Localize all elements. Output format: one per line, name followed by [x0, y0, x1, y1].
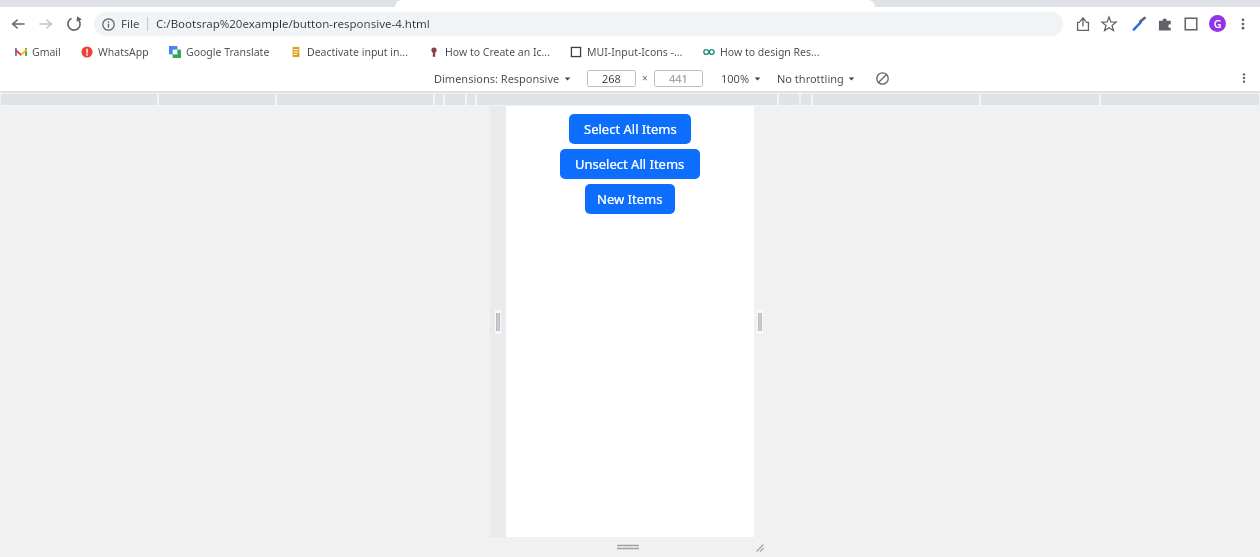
staticText: File — [121, 16, 140, 32]
button[interactable]: Select All Items — [569, 114, 691, 144]
button[interactable]: More options — [1233, 14, 1253, 34]
staticText: How to Create an Ic... — [445, 45, 550, 59]
button[interactable]: Disable cache — [873, 69, 891, 87]
button[interactable]: Unselect All Items — [560, 149, 700, 179]
staticText: 441 — [669, 71, 688, 86]
button[interactable]: Resize width left — [493, 307, 503, 337]
button[interactable]: Resize width right — [755, 307, 765, 337]
button[interactable]: How to Create an Ic... — [425, 43, 553, 61]
button[interactable]: Bookmark — [1099, 14, 1119, 34]
button[interactable]: Resize height — [611, 540, 645, 554]
button[interactable]: More device options — [1234, 68, 1254, 88]
staticText: Deactivate input in... — [307, 45, 408, 59]
button[interactable]: MUI-Input-Icons -... — [567, 43, 686, 61]
staticText: No throttling — [777, 71, 844, 86]
button[interactable]: 268 — [587, 70, 636, 87]
staticText: C:/Bootsrap%20example/button-responsive-… — [156, 16, 430, 32]
button[interactable]: How to design Res... — [700, 43, 823, 61]
button[interactable]: Resize corner — [752, 540, 766, 554]
button[interactable]: Forward — [36, 14, 56, 34]
button[interactable]: Back — [8, 14, 28, 34]
staticText: New Items — [597, 190, 663, 208]
button[interactable]: Extensions — [1155, 14, 1175, 34]
staticText: G — [1214, 17, 1222, 31]
button[interactable]: File — [94, 12, 1063, 36]
staticText: MUI-Input-Icons -... — [587, 45, 683, 59]
button[interactable]: Deactivate input in... — [287, 43, 411, 61]
staticText: Dimensions: Responsive — [434, 71, 560, 86]
staticText: Google Translate — [186, 45, 270, 59]
button[interactable]: WhatsApp — [78, 43, 152, 61]
staticText: WhatsApp — [98, 45, 149, 59]
button[interactable]: Reload — [64, 14, 84, 34]
button[interactable]: Dimensions: Responsive — [432, 69, 573, 88]
staticText: Unselect All Items — [575, 155, 685, 173]
button[interactable]: No throttling — [775, 69, 857, 88]
button[interactable]: Profile — [1209, 15, 1226, 32]
button[interactable]: 100% — [719, 69, 763, 88]
button[interactable]: Side panel — [1181, 14, 1201, 34]
button[interactable]: Gmail — [12, 43, 64, 61]
button[interactable]: Share — [1073, 14, 1093, 34]
staticText: Gmail — [32, 45, 61, 59]
staticText: 268 — [602, 71, 621, 86]
staticText: Select All Items — [584, 120, 677, 138]
staticText: × — [642, 71, 648, 85]
button[interactable]: Google Translate — [166, 43, 273, 61]
staticText: 100% — [721, 71, 750, 86]
staticText: How to design Res... — [720, 45, 820, 59]
button[interactable]: New Items — [585, 184, 675, 214]
button[interactable]: Eyedropper — [1129, 14, 1149, 34]
button[interactable]: 441 — [654, 70, 703, 87]
